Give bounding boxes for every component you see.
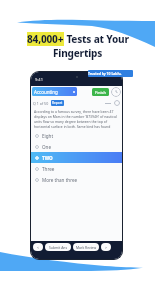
- button[interactable]: Submit Ans: [45, 243, 71, 251]
- button[interactable]: Mark Review: [73, 243, 99, 251]
- staticText: Submit Ans: [49, 245, 68, 250]
- staticText: TWO: [42, 155, 53, 161]
- staticText: Q 1 of 50: [33, 101, 49, 106]
- button[interactable]: <: [33, 243, 43, 251]
- staticText: <: [37, 245, 39, 250]
- staticText: One: [42, 144, 52, 150]
- staticText: Trusted by 10 Lakh+ Students: [88, 71, 133, 76]
- button[interactable]: Bookmark: [114, 100, 120, 106]
- staticText: Accounting: [34, 89, 58, 95]
- staticText: Three: [42, 166, 55, 172]
- button[interactable]: >: [101, 243, 111, 251]
- button[interactable]: Accounting: [32, 87, 77, 96]
- button[interactable]: Trusted by 10 Lakh+ Students: [88, 70, 133, 77]
- staticText: Report: [52, 101, 63, 105]
- button[interactable]: Three: [31, 163, 122, 174]
- staticText: >: [105, 245, 107, 250]
- staticText: Mark Review: [76, 245, 97, 250]
- staticText: Eight: [42, 133, 54, 139]
- staticText: 84,000+: [27, 32, 64, 46]
- button[interactable]: Timer: [111, 87, 121, 97]
- button[interactable]: Report: [51, 100, 64, 106]
- staticText: 9:41: [35, 77, 43, 82]
- staticText: Tests at Your: [64, 32, 129, 46]
- button[interactable]: More than three: [31, 174, 122, 185]
- staticText: According to a famous survey, there have…: [34, 109, 120, 129]
- staticText: More than three: [42, 177, 78, 183]
- button[interactable]: TWO: [31, 152, 122, 163]
- staticText: Fingertips: [53, 46, 103, 60]
- button[interactable]: One: [31, 141, 122, 152]
- button[interactable]: Eight: [31, 130, 122, 141]
- staticText: Finish: [95, 90, 106, 95]
- button[interactable]: Finish: [92, 88, 109, 96]
